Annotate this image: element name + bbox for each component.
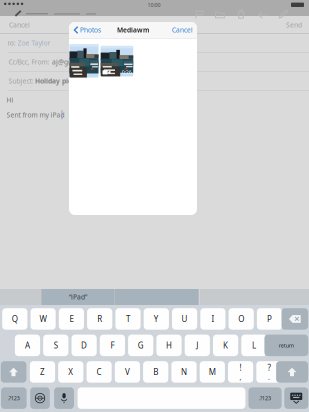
button[interactable]: F	[100, 335, 125, 356]
button[interactable]: Y	[144, 308, 169, 330]
button[interactable]: G	[128, 335, 153, 356]
button[interactable]: S	[43, 335, 68, 356]
button[interactable]: R	[87, 308, 112, 330]
staticText: F	[110, 340, 114, 351]
button[interactable]: O	[229, 308, 254, 330]
staticText: P	[267, 314, 272, 324]
button[interactable]: Shift	[276, 361, 308, 383]
staticText: V	[125, 367, 130, 377]
staticText: D	[81, 340, 87, 351]
staticText: Y	[154, 314, 159, 324]
staticText: L	[252, 340, 256, 351]
staticText: aj@gmail.com	[52, 58, 97, 66]
button[interactable]: Q	[2, 308, 27, 330]
button[interactable]: Send	[262, 20, 302, 30]
staticText: B	[153, 367, 158, 377]
staticText: R	[97, 314, 102, 324]
button[interactable]: !	[228, 361, 253, 383]
button[interactable]: U	[172, 308, 197, 330]
button[interactable]: Cancel	[9, 20, 49, 30]
staticText: E	[69, 314, 73, 324]
button[interactable]: T	[115, 308, 141, 330]
staticText: A	[25, 340, 30, 351]
button[interactable]: C	[86, 361, 112, 383]
button[interactable]: I	[200, 308, 225, 330]
button[interactable]: D	[71, 335, 97, 356]
staticText: C	[97, 367, 102, 377]
staticText: To:	[7, 39, 16, 47]
staticText: Photos	[80, 26, 101, 34]
staticText: ,	[240, 373, 242, 382]
button[interactable]: Photos	[73, 22, 105, 38]
button[interactable]: P	[257, 308, 282, 330]
button[interactable]: E	[59, 308, 84, 330]
staticText: Cancel	[9, 21, 30, 29]
button[interactable]: ?	[256, 361, 281, 383]
staticText: return	[279, 342, 294, 349]
staticText: !	[240, 362, 242, 373]
button[interactable]: N	[171, 361, 197, 383]
button[interactable]: H	[156, 335, 182, 356]
button[interactable]: Video, 0:26	[101, 46, 133, 76]
button[interactable]: Next keyboard	[30, 387, 50, 409]
button[interactable]: Photo	[69, 44, 98, 77]
button[interactable]: B	[143, 361, 168, 383]
button[interactable]: Delete	[281, 308, 308, 330]
staticText: Holiday pictures	[35, 77, 88, 85]
button[interactable]: Hide keyboard	[284, 387, 308, 409]
staticText: Cancel	[172, 26, 193, 34]
staticText: Q	[12, 314, 18, 324]
staticText: .	[268, 373, 270, 382]
staticText: T	[126, 314, 130, 324]
button[interactable]: return	[264, 335, 308, 356]
staticText: I	[211, 314, 214, 324]
staticText: Hi	[7, 96, 14, 104]
staticText: Send	[286, 21, 302, 29]
staticText: K	[223, 340, 228, 351]
staticText: H	[166, 340, 172, 351]
staticText: ?	[267, 362, 270, 373]
button[interactable]: A	[15, 335, 40, 356]
staticText: J	[196, 340, 198, 351]
button[interactable]: Space	[78, 387, 245, 409]
staticText: Mediawm	[117, 26, 149, 34]
staticText: S	[54, 340, 58, 351]
button[interactable]: X	[58, 361, 83, 383]
button[interactable]: J	[185, 335, 210, 356]
button[interactable]: Z	[30, 361, 55, 383]
staticText: N	[181, 367, 187, 377]
staticText: O	[238, 314, 244, 324]
button[interactable]: .?123	[1, 387, 27, 409]
staticText: W	[40, 314, 47, 324]
button[interactable]: K	[213, 335, 238, 356]
button[interactable]: Dictation	[54, 387, 74, 409]
staticText: M	[209, 367, 216, 377]
staticText: Zoe Taylor	[18, 39, 51, 47]
staticText: X	[68, 367, 73, 377]
staticText: Cc/Bcc, From:	[8, 58, 49, 66]
staticText: 10:00	[147, 1, 160, 8]
button[interactable]: .?123	[248, 387, 282, 409]
button[interactable]: V	[115, 361, 140, 383]
staticText: .?123	[8, 395, 20, 402]
button[interactable]: M	[200, 361, 225, 383]
staticText: Z	[40, 367, 45, 377]
button[interactable]: Cancel	[167, 22, 193, 38]
staticText: G	[138, 340, 144, 351]
button[interactable]: W	[30, 308, 56, 330]
staticText: Subject:	[8, 77, 33, 85]
staticText: U	[182, 314, 188, 324]
staticText: Sent from my iPad	[7, 111, 65, 119]
button[interactable]: L	[241, 335, 266, 356]
staticText: .?123	[259, 395, 271, 402]
staticText: 0:26	[122, 69, 132, 76]
staticText: “iPad”	[69, 293, 87, 301]
button[interactable]: Shift	[1, 361, 26, 383]
